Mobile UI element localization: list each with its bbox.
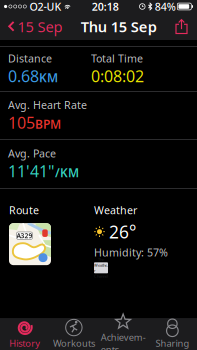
staticText: The bbox=[98, 257, 104, 262]
button[interactable]: History bbox=[0, 318, 49, 350]
button[interactable]: Share bbox=[169, 16, 193, 36]
button[interactable]: Workouts bbox=[49, 318, 98, 350]
staticText: Avg. Heart Rate bbox=[8, 98, 87, 112]
staticText: 11'41" bbox=[8, 160, 55, 182]
staticText: 84% bbox=[155, 0, 176, 14]
staticText: KM bbox=[39, 70, 58, 86]
button[interactable]: Route map bbox=[9, 223, 51, 265]
staticText: 0.68 bbox=[8, 65, 39, 87]
staticText: Thu 15 Sep bbox=[81, 17, 157, 36]
staticText: 15 Sep bbox=[17, 17, 62, 36]
button[interactable]: Sharing bbox=[148, 318, 197, 350]
staticText: 20:18 bbox=[92, 0, 119, 14]
staticText: Weather bbox=[94, 203, 137, 217]
staticText: Humidity: 57% bbox=[94, 245, 168, 259]
staticText: History bbox=[9, 337, 40, 349]
staticText: Total Time bbox=[91, 51, 143, 65]
staticText: Distance bbox=[8, 51, 52, 65]
staticText: Workouts bbox=[53, 337, 95, 349]
button[interactable]: 15 Sep bbox=[4, 13, 68, 40]
staticText: 26° bbox=[109, 220, 136, 243]
staticText: Route bbox=[9, 203, 39, 217]
staticText: BPM bbox=[35, 116, 61, 132]
staticText: 105 bbox=[8, 112, 35, 133]
staticText: Achievements bbox=[101, 331, 146, 350]
staticText: Weather bbox=[94, 262, 108, 273]
staticText: /KM bbox=[55, 165, 79, 181]
staticText: O2-UK bbox=[29, 0, 61, 14]
staticText: Sharing bbox=[155, 337, 189, 349]
staticText: 0:08:02 bbox=[91, 65, 144, 87]
staticText: Channel bbox=[94, 274, 108, 279]
staticText: A329 bbox=[16, 231, 32, 240]
button[interactable]: Achievements bbox=[98, 318, 148, 350]
staticText: Avg. Pace bbox=[8, 146, 56, 160]
